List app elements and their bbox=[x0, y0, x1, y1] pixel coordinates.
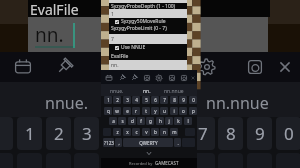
button[interactable]: 8 bbox=[218, 117, 243, 150]
button[interactable]: 0 bbox=[276, 117, 300, 150]
button[interactable]: f bbox=[137, 117, 145, 125]
button[interactable]: Attach bbox=[130, 74, 138, 82]
button[interactable]: c bbox=[132, 128, 140, 136]
button[interactable]: s bbox=[118, 117, 126, 125]
button[interactable]: z bbox=[113, 128, 121, 136]
button[interactable] bbox=[132, 153, 157, 168]
button[interactable]: a bbox=[109, 117, 117, 125]
button[interactable]: Pin bbox=[118, 74, 126, 82]
button[interactable]: 7 bbox=[160, 96, 168, 104]
button[interactable]: 4 bbox=[103, 117, 128, 150]
button[interactable]: v bbox=[142, 128, 150, 136]
button[interactable]: 3 bbox=[123, 96, 131, 104]
button[interactable]: u bbox=[160, 107, 168, 115]
button[interactable]: 5 bbox=[142, 96, 150, 104]
button[interactable]: e bbox=[123, 107, 131, 115]
button[interactable]: Use NNUE bbox=[109, 44, 187, 51]
button[interactable]: , bbox=[115, 138, 122, 147]
button[interactable]: m bbox=[170, 128, 178, 136]
button[interactable]: j bbox=[165, 117, 173, 125]
button[interactable]: More bbox=[168, 74, 176, 82]
staticText: 7 bbox=[111, 36, 114, 43]
button[interactable]: QWERTY bbox=[123, 138, 173, 147]
button[interactable]: 5 bbox=[132, 117, 157, 150]
button[interactable]: 3 bbox=[74, 117, 99, 150]
button[interactable] bbox=[103, 153, 128, 168]
button[interactable]: More bbox=[180, 74, 188, 82]
button[interactable]: 1 bbox=[17, 117, 42, 150]
staticText: 8 bbox=[226, 122, 236, 145]
staticText: QWERTY bbox=[139, 140, 158, 146]
button[interactable]: l bbox=[184, 117, 192, 125]
staticText: 0 bbox=[284, 122, 294, 145]
button[interactable]: nn. bbox=[109, 60, 187, 70]
button[interactable]: Syzygy50MoveRule bbox=[109, 18, 187, 25]
button[interactable]: 2 bbox=[46, 117, 71, 150]
button[interactable]: p bbox=[189, 107, 197, 115]
button[interactable]: o bbox=[179, 107, 187, 115]
button[interactable]: b bbox=[151, 128, 159, 136]
staticText: ?123 bbox=[104, 140, 114, 146]
button[interactable]: i bbox=[170, 107, 178, 115]
button[interactable] bbox=[190, 153, 215, 168]
button[interactable]: y bbox=[151, 107, 159, 115]
staticText: d bbox=[131, 118, 134, 124]
button[interactable]: 4 bbox=[132, 96, 140, 104]
button[interactable]: x bbox=[123, 128, 131, 136]
staticText: 7 bbox=[163, 97, 166, 103]
button[interactable]: Stickers bbox=[245, 57, 265, 77]
staticText: nn.nnue bbox=[164, 88, 184, 95]
button[interactable] bbox=[161, 153, 186, 168]
staticText: nn. bbox=[111, 62, 119, 69]
button[interactable]: 6 bbox=[161, 117, 186, 150]
button[interactable]: 7 bbox=[109, 34, 187, 44]
staticText: 1 bbox=[111, 11, 114, 18]
button[interactable]: 6 bbox=[151, 96, 159, 104]
button[interactable]: Pin bbox=[54, 57, 74, 77]
button[interactable]: nn. bbox=[28, 17, 268, 52]
button[interactable]: h bbox=[156, 117, 164, 125]
button[interactable]: Sticker bbox=[143, 74, 151, 82]
button[interactable]: q bbox=[104, 107, 112, 115]
button[interactable]: Calendar bbox=[105, 74, 113, 82]
button[interactable]: 1 bbox=[104, 96, 112, 104]
button[interactable]: 9 bbox=[179, 96, 187, 104]
button[interactable]: Close bbox=[190, 75, 196, 81]
button[interactable]: Calendar bbox=[13, 57, 33, 77]
staticText: nnue. bbox=[110, 88, 124, 95]
button[interactable]: 8 bbox=[170, 96, 178, 104]
button[interactable]: d bbox=[128, 117, 136, 125]
button[interactable]: g bbox=[146, 117, 154, 125]
staticText: m bbox=[172, 129, 177, 135]
button[interactable]: . bbox=[174, 138, 181, 147]
button[interactable]: w bbox=[113, 107, 121, 115]
button[interactable]: Settings bbox=[197, 57, 217, 77]
button[interactable]: ?123 bbox=[103, 138, 114, 147]
button[interactable]: Settings bbox=[155, 74, 163, 82]
button[interactable]: 1 bbox=[109, 9, 187, 18]
button[interactable]: 9 bbox=[247, 117, 272, 150]
staticText: a bbox=[112, 118, 115, 124]
button[interactable]: Close bbox=[275, 57, 295, 77]
button[interactable]: 0 bbox=[189, 96, 197, 104]
button[interactable]: n bbox=[160, 128, 168, 136]
button[interactable]: 7 bbox=[190, 117, 215, 150]
staticText: 0 bbox=[192, 97, 195, 103]
button[interactable]: r bbox=[132, 107, 140, 115]
staticText: 3 bbox=[126, 97, 129, 103]
button[interactable]: t bbox=[142, 107, 150, 115]
button[interactable]: k bbox=[174, 117, 182, 125]
staticText: 9 bbox=[182, 97, 185, 103]
button[interactable]: 2 bbox=[113, 96, 121, 104]
